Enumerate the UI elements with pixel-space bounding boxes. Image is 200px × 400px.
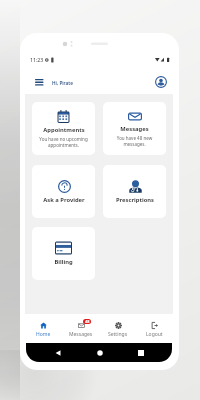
staticText: 48 xyxy=(85,319,90,324)
button[interactable]: Settings xyxy=(99,314,136,342)
button[interactable]: Billing xyxy=(32,227,95,280)
other: Menu xyxy=(35,79,44,86)
staticText: Billing xyxy=(54,258,73,266)
staticText: Logout xyxy=(146,331,163,338)
button[interactable]: Prescriptions xyxy=(103,165,166,218)
button[interactable]: Appointments xyxy=(32,102,95,155)
staticText: Prescriptions xyxy=(116,196,154,204)
button[interactable]: Home xyxy=(25,314,62,342)
staticText: Appointments xyxy=(43,126,85,134)
button[interactable]: Menu xyxy=(31,76,77,89)
button[interactable]: Messages xyxy=(103,102,166,155)
button[interactable]: Recents xyxy=(135,347,146,358)
button[interactable]: Ask a Provider xyxy=(32,165,95,218)
button[interactable]: Account xyxy=(154,75,168,89)
staticText: Hi, Pirate xyxy=(52,80,73,86)
staticText: Messages xyxy=(120,125,149,133)
staticText: Messages xyxy=(69,331,93,338)
button[interactable]: 48 xyxy=(62,314,99,342)
staticText: 11:23 xyxy=(30,56,44,63)
button[interactable]: Logout xyxy=(136,314,173,342)
button[interactable]: Back xyxy=(52,347,63,358)
staticText: You have 48 new messages. xyxy=(106,135,163,147)
button[interactable]: Home xyxy=(94,347,105,358)
staticText: Ask a Provider xyxy=(43,196,85,204)
staticText: Settings xyxy=(108,331,128,338)
staticText: Home xyxy=(36,331,51,338)
staticText: You have no upcoming appointments. xyxy=(35,136,92,148)
